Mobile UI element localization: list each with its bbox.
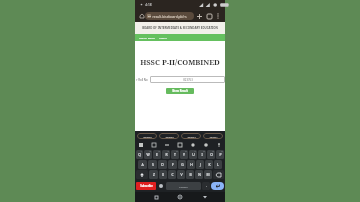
staticText: J (200, 162, 201, 167)
button[interactable]: Shift (136, 170, 148, 179)
staticText: 400099 (165, 135, 174, 138)
staticText: 6 (185, 150, 187, 152)
staticText: Show Result (172, 89, 188, 93)
button[interactable]: M (204, 170, 212, 179)
staticText: 800000 (143, 135, 152, 138)
staticText: D (161, 162, 164, 167)
button[interactable]: 782341 (203, 133, 223, 139)
staticText: C (171, 172, 174, 177)
button[interactable]: Settings (189, 141, 197, 149)
staticText: U (192, 152, 195, 157)
button[interactable]: Result (157, 36, 169, 39)
staticText: 3 (158, 150, 160, 152)
button[interactable]: T (171, 150, 179, 159)
button[interactable]: Enter (211, 182, 224, 190)
button[interactable]: Sticker (163, 141, 171, 149)
button[interactable]: Y (180, 150, 188, 159)
button[interactable]: . (202, 182, 210, 190)
button[interactable]: V (177, 170, 185, 179)
staticText: T1 (148, 15, 151, 18)
staticText: 823763 (183, 78, 193, 82)
staticText: r Roll No (136, 78, 148, 82)
staticText: . (206, 184, 207, 188)
button[interactable]: More options (214, 12, 222, 20)
button[interactable]: K (205, 160, 213, 169)
button[interactable]: U (189, 150, 197, 159)
staticText: I (201, 152, 203, 157)
staticText: B (189, 172, 192, 177)
staticText: X (162, 172, 164, 177)
staticText: K (208, 162, 211, 167)
button[interactable]: Emoji (202, 141, 210, 149)
staticText: R (165, 152, 168, 157)
button[interactable]: Backspace (213, 170, 224, 179)
staticText: S (152, 162, 154, 167)
staticText: N (198, 172, 201, 177)
button[interactable]: 400099 (159, 133, 179, 139)
staticText: 5 (176, 150, 178, 152)
staticText: 8 (203, 150, 205, 152)
button[interactable]: GIF (150, 141, 158, 149)
button[interactable]: 800000 (137, 133, 157, 139)
button[interactable]: D (158, 160, 167, 169)
button[interactable]: Search Result (137, 36, 157, 39)
staticText: Search Result (139, 36, 155, 39)
button[interactable]: A (138, 160, 147, 169)
button[interactable]: J (196, 160, 204, 169)
staticText: A (141, 162, 144, 167)
button[interactable]: Clipboard (176, 141, 184, 149)
button[interactable]: G (178, 160, 186, 169)
button[interactable]: F (168, 160, 177, 169)
button[interactable]: New tab (194, 11, 204, 21)
staticText: 0 (221, 150, 223, 152)
button[interactable]: Language (157, 182, 165, 190)
button[interactable]: Recents (152, 193, 160, 201)
button[interactable]: Home (138, 12, 145, 19)
button[interactable]: Subscribe (136, 182, 156, 190)
button[interactable]: Keyboard (137, 141, 145, 149)
staticText: O (210, 152, 213, 157)
button[interactable]: N (195, 170, 203, 179)
button[interactable]: E (153, 150, 161, 159)
button[interactable]: T1 (145, 12, 194, 20)
staticText: L (217, 162, 219, 167)
button[interactable]: I (198, 150, 206, 159)
button[interactable]: C (168, 170, 176, 179)
button[interactable]: P (216, 150, 224, 159)
button[interactable]: Voice (215, 141, 223, 149)
button[interactable]: Z (149, 170, 158, 179)
button[interactable]: 300534 (181, 133, 201, 139)
button[interactable]: W (144, 150, 152, 159)
staticText: English (179, 185, 188, 188)
staticText: 782341 (209, 135, 218, 138)
button[interactable]: English (166, 182, 201, 190)
button[interactable]: R (162, 150, 170, 159)
button[interactable]: Tabs (204, 11, 214, 21)
staticText: 4:18 (145, 3, 152, 7)
button[interactable]: S (148, 160, 157, 169)
staticText: W (146, 152, 150, 157)
button[interactable]: X (159, 170, 167, 179)
staticText: result.biseboard.pk/rs (152, 14, 187, 18)
button[interactable]: Back (201, 193, 209, 201)
button[interactable]: Show Result (166, 88, 194, 94)
button[interactable]: 823763 (150, 76, 225, 83)
button[interactable]: Q (136, 150, 143, 159)
staticText: BOARD OF INTERMEDIATE & SECONDARY EDUCAT… (142, 26, 218, 30)
staticText: M (206, 172, 210, 177)
staticText: V (180, 172, 183, 177)
button[interactable]: B (186, 170, 194, 179)
button[interactable]: Home (176, 193, 184, 201)
staticText: P (219, 152, 222, 157)
button[interactable]: O (207, 150, 215, 159)
staticText: 7 (194, 150, 196, 152)
button[interactable]: H (187, 160, 195, 169)
staticText: 4 (167, 150, 169, 152)
button[interactable]: L (214, 160, 222, 169)
staticText: Y (183, 152, 185, 157)
staticText: G (181, 162, 184, 167)
staticText: 1 (140, 150, 142, 152)
staticText: Z (153, 172, 155, 177)
staticText: F (172, 162, 174, 167)
staticText: 9 (212, 150, 214, 152)
